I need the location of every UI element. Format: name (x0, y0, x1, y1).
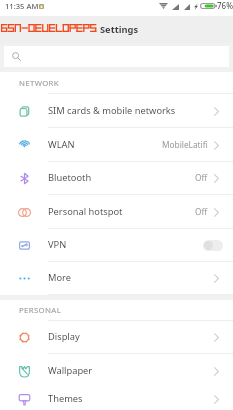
staticText: WLAN (48, 138, 75, 151)
button[interactable]: Wallpaper (0, 354, 233, 388)
staticText: MobileLatifi (162, 139, 208, 150)
staticText: Bluetooth (48, 171, 92, 184)
staticText: Display (48, 330, 80, 343)
button[interactable]: WLAN (0, 128, 233, 162)
button[interactable]: VPN (0, 229, 233, 262)
staticText: 76% (217, 0, 233, 11)
staticText: More (48, 271, 71, 284)
staticText: Themes (48, 392, 83, 405)
button[interactable]: SIM cards & mobile networks (0, 94, 233, 128)
staticText: Off (195, 206, 208, 217)
staticText: VPN (48, 238, 67, 251)
staticText: PERSONAL (19, 305, 62, 316)
button[interactable]: Search settings (4, 46, 229, 67)
button[interactable]: Themes (0, 382, 233, 410)
staticText: Off (195, 172, 208, 183)
button[interactable]: More (0, 262, 233, 295)
staticText: Wallpaper (48, 364, 93, 377)
staticText: 11:35 AM (5, 1, 39, 11)
staticText: Personal hotspot (48, 205, 123, 218)
staticText: NETWORK (19, 78, 59, 89)
staticText: Settings (100, 23, 139, 36)
button[interactable]: Display (0, 321, 233, 354)
button[interactable]: Bluetooth (0, 162, 233, 195)
staticText: SIM cards & mobile networks (48, 104, 176, 117)
button[interactable]: Personal hotspot (0, 195, 233, 229)
